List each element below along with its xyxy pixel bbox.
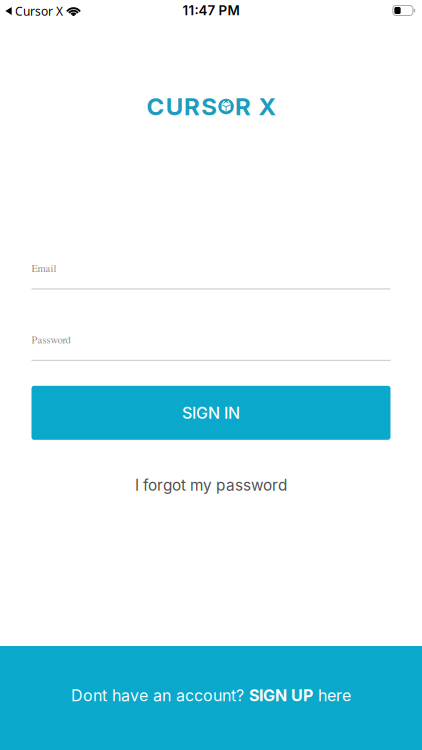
button[interactable]: Sign up	[0, 646, 422, 750]
staticText: Email	[31, 261, 56, 275]
button[interactable]: Back to Cursor X	[0, 2, 81, 19]
staticText: I forgot my password	[135, 476, 287, 494]
staticText: Password	[31, 332, 70, 346]
button[interactable]: SIGN IN	[31, 386, 390, 440]
staticText: U	[166, 92, 183, 121]
staticText: R	[235, 92, 251, 121]
staticText: Dont have an account? SIGN UP here	[71, 686, 351, 705]
staticText: C	[147, 92, 165, 121]
staticText: 11:47 PM	[182, 2, 239, 18]
button[interactable]: I forgot my password	[135, 476, 287, 494]
staticText: S	[201, 92, 217, 121]
staticText: X	[258, 92, 275, 121]
staticText: Cursor X	[15, 3, 63, 19]
staticText: SIGN IN	[182, 403, 240, 422]
staticText: R	[184, 92, 200, 121]
